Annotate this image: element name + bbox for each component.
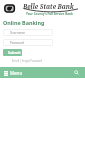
button[interactable]: Search — [70, 70, 85, 75]
staticText: Username — [10, 31, 26, 35]
button[interactable]: Submit — [3, 49, 22, 56]
staticText: Password — [10, 41, 24, 45]
button[interactable]: Password — [3, 39, 53, 46]
staticText: Your County's Full Service Bank — [26, 12, 73, 16]
button[interactable]: Menu — [0, 70, 26, 76]
staticText: Menu — [10, 70, 23, 76]
button[interactable]: Username — [3, 29, 53, 36]
staticText: Online Banking — [3, 19, 45, 26]
staticText: Enroll | Forgot Password — [12, 59, 43, 63]
staticText: Belle State Bank — [23, 2, 74, 10]
staticText: Submit — [8, 50, 21, 55]
